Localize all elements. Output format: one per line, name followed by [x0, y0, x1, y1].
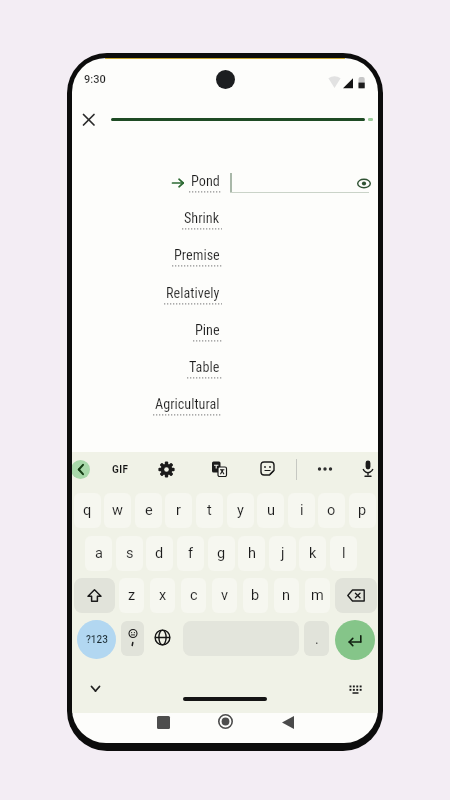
staticText: e	[145, 502, 153, 519]
staticText: l	[342, 545, 346, 562]
button[interactable]: b	[243, 578, 268, 613]
button[interactable]: s	[116, 536, 143, 571]
button[interactable]: .	[304, 621, 329, 656]
button[interactable]: h	[238, 536, 265, 571]
button[interactable]: x	[150, 578, 175, 613]
button[interactable]: v	[212, 578, 237, 613]
button[interactable]: d	[146, 536, 173, 571]
staticText: GIF	[112, 464, 129, 476]
button[interactable]	[211, 461, 227, 477]
button[interactable]: a	[85, 536, 112, 571]
button[interactable]: p	[349, 493, 376, 528]
button[interactable]	[361, 460, 375, 479]
staticText: Relatively	[166, 285, 220, 302]
button[interactable]	[260, 461, 276, 477]
button[interactable]: ?123	[77, 620, 116, 659]
staticText: x	[159, 587, 167, 604]
staticText: q	[83, 502, 92, 519]
staticText: Pine	[195, 322, 220, 339]
staticText: a	[95, 545, 103, 562]
staticText: u	[267, 502, 275, 519]
staticText: s	[126, 545, 134, 562]
button[interactable]	[72, 460, 90, 479]
button[interactable]: i	[288, 493, 315, 528]
staticText: t	[207, 502, 212, 519]
button[interactable]: j	[269, 536, 296, 571]
button[interactable]	[335, 620, 375, 660]
button[interactable]: n	[274, 578, 299, 613]
staticText: h	[248, 545, 256, 562]
staticText: Premise	[174, 247, 220, 264]
staticText: m	[311, 587, 324, 604]
staticText: Pond	[191, 173, 220, 190]
staticText: v	[221, 587, 229, 604]
staticText: ?123	[86, 634, 108, 646]
staticText: y	[237, 502, 244, 519]
staticText: g	[217, 545, 226, 562]
button[interactable]	[154, 629, 171, 646]
button[interactable]	[121, 621, 144, 656]
button[interactable]: f	[177, 536, 204, 571]
button[interactable]	[346, 680, 364, 698]
staticText: k	[309, 545, 317, 562]
button[interactable]: GIF	[106, 460, 134, 479]
staticText: d	[155, 545, 164, 562]
button[interactable]: g	[208, 536, 235, 571]
button[interactable]: z	[119, 578, 144, 613]
staticText: p	[358, 502, 367, 519]
staticText: 9:30	[84, 73, 106, 86]
button[interactable]	[158, 461, 175, 478]
button[interactable]	[218, 714, 233, 729]
button[interactable]	[74, 578, 115, 613]
button[interactable]	[355, 174, 373, 192]
button[interactable]	[78, 109, 99, 130]
button[interactable]: y	[227, 493, 254, 528]
button[interactable]: w	[104, 493, 131, 528]
button[interactable]: c	[181, 578, 206, 613]
staticText: Shrink	[184, 210, 220, 227]
staticText: c	[190, 587, 198, 604]
button[interactable]: r	[165, 493, 192, 528]
button[interactable]: k	[299, 536, 326, 571]
staticText: n	[282, 587, 291, 604]
staticText: i	[300, 502, 304, 519]
button[interactable]: t	[196, 493, 223, 528]
button[interactable]	[281, 715, 295, 729]
staticText: w	[112, 502, 123, 519]
staticText: r	[176, 502, 181, 519]
staticText: .	[315, 631, 319, 647]
button[interactable]	[156, 715, 170, 729]
button[interactable]: l	[330, 536, 357, 571]
button[interactable]: m	[305, 578, 330, 613]
staticText: Table	[189, 359, 220, 376]
staticText: z	[128, 587, 136, 604]
staticText: Agricultural	[155, 396, 220, 413]
button[interactable]: o	[318, 493, 345, 528]
button[interactable]: e	[135, 493, 162, 528]
staticText: b	[251, 587, 260, 604]
button[interactable]	[315, 460, 335, 478]
button[interactable]: u	[257, 493, 284, 528]
staticText: f	[188, 545, 194, 562]
staticText: o	[327, 502, 336, 519]
button[interactable]	[86, 680, 104, 698]
button[interactable]	[335, 578, 377, 613]
button[interactable]: q	[74, 493, 101, 528]
staticText: j	[281, 545, 285, 562]
